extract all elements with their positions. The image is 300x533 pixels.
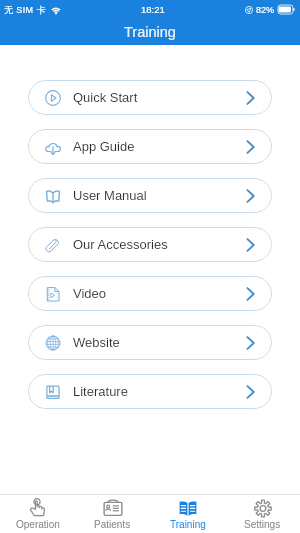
button[interactable]: Our Accessories bbox=[28, 227, 272, 262]
button[interactable]: Website bbox=[28, 325, 272, 360]
staticText: Video bbox=[73, 286, 107, 301]
staticText: Patients bbox=[94, 519, 131, 530]
staticText: Quick Start bbox=[73, 90, 138, 105]
staticText: Our Accessories bbox=[73, 237, 168, 252]
button[interactable]: Operation bbox=[0, 495, 75, 533]
staticText: Operation bbox=[16, 519, 60, 530]
staticText: Website bbox=[73, 335, 120, 350]
button[interactable]: Video bbox=[28, 276, 272, 311]
button[interactable]: Patients bbox=[75, 495, 150, 533]
staticText: Training bbox=[170, 519, 206, 530]
staticText: 无 SIM 卡 bbox=[4, 4, 46, 15]
staticText: App Guide bbox=[73, 139, 135, 154]
button[interactable]: Literature bbox=[28, 374, 272, 409]
staticText: 82% bbox=[256, 5, 275, 15]
staticText: 18:21 bbox=[141, 4, 165, 15]
button[interactable]: App Guide bbox=[28, 129, 272, 164]
button[interactable]: Settings bbox=[225, 495, 300, 533]
staticText: Settings bbox=[244, 519, 281, 530]
staticText: Training bbox=[124, 24, 176, 40]
button[interactable]: Quick Start bbox=[28, 80, 272, 115]
button[interactable]: Training bbox=[150, 495, 225, 533]
staticText: Literature bbox=[73, 384, 128, 399]
staticText: User Manual bbox=[73, 188, 147, 203]
button[interactable]: User Manual bbox=[28, 178, 272, 213]
